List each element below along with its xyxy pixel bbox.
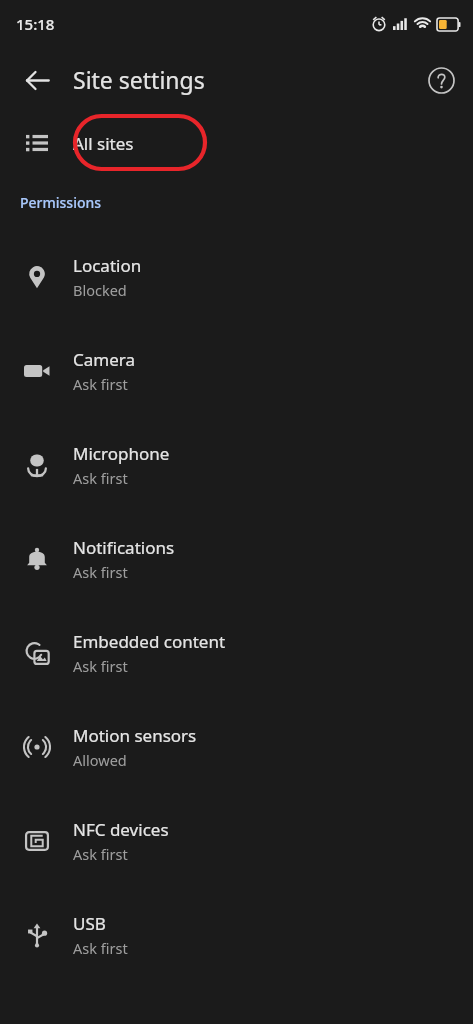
button[interactable]: Microphone (0, 418, 473, 512)
staticText: Blocked (73, 280, 127, 300)
staticText: Ask first (73, 938, 128, 958)
button[interactable]: All sites (0, 112, 473, 174)
button[interactable]: Notifications (0, 512, 473, 606)
button[interactable]: Motion sensors (0, 700, 473, 794)
staticText: Camera (73, 348, 135, 371)
button[interactable]: USB (0, 888, 473, 982)
staticText: Notifications (73, 536, 175, 559)
staticText: Embedded content (73, 630, 226, 653)
button[interactable]: NFC devices (0, 794, 473, 888)
button[interactable]: Back (10, 53, 64, 107)
button[interactable]: Camera (0, 324, 473, 418)
staticText: Allowed (73, 750, 127, 770)
staticText: Location (73, 254, 142, 277)
staticText: Motion sensors (73, 724, 197, 747)
staticText: Permissions (20, 193, 473, 212)
staticText: USB (73, 912, 106, 935)
staticText: Ask first (73, 374, 128, 394)
staticText: Microphone (73, 442, 170, 465)
staticText: Ask first (73, 468, 128, 488)
button[interactable]: Embedded content (0, 606, 473, 700)
button[interactable]: Help (417, 56, 465, 104)
button[interactable]: Location (0, 230, 473, 324)
staticText: NFC devices (73, 818, 169, 841)
staticText: All sites (73, 132, 134, 155)
staticText: 15:18 (16, 14, 55, 34)
staticText: Ask first (73, 656, 128, 676)
staticText: Site settings (73, 64, 205, 95)
staticText: Ask first (73, 844, 128, 864)
staticText: Ask first (73, 562, 128, 582)
